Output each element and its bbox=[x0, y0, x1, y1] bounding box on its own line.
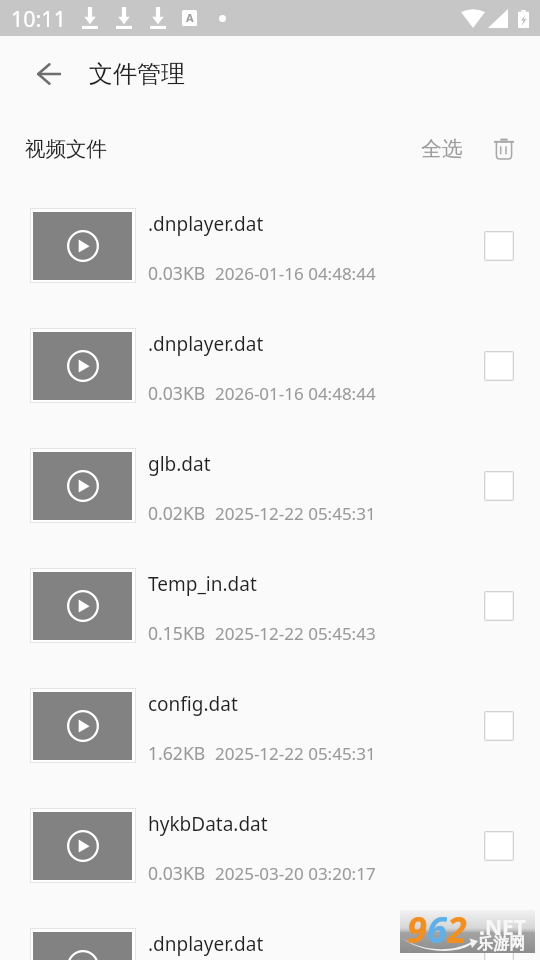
staticText: 0.02KB bbox=[148, 501, 206, 525]
button[interactable]: Delete bbox=[484, 129, 524, 169]
button[interactable]: Back bbox=[25, 50, 73, 98]
staticText: .dnplayer.dat bbox=[148, 331, 264, 357]
button[interactable]: hykbData.dat bbox=[0, 786, 540, 906]
staticText: .dnplayer.dat bbox=[148, 211, 264, 237]
staticText: 文件管理 bbox=[89, 59, 185, 89]
staticText: 6 bbox=[427, 905, 447, 948]
staticText: glb.dat bbox=[148, 451, 211, 477]
staticText: 10:11 bbox=[11, 4, 66, 33]
staticText: 0.03KB bbox=[148, 861, 206, 885]
staticText: 乐游网 bbox=[477, 934, 525, 954]
staticText: 2025-03-20 03:20:17 bbox=[215, 862, 376, 885]
button[interactable]: config.dat bbox=[0, 666, 540, 786]
staticText: Temp_in.dat bbox=[148, 571, 257, 597]
staticText: config.dat bbox=[148, 691, 238, 717]
button[interactable]: Select file bbox=[484, 591, 514, 621]
button[interactable]: .dnplayer.dat bbox=[0, 906, 540, 960]
staticText: 1.62KB bbox=[148, 741, 206, 765]
staticText: A bbox=[186, 10, 194, 25]
button[interactable]: Select file bbox=[484, 471, 514, 501]
staticText: 2025-12-22 05:45:31 bbox=[215, 742, 376, 765]
staticText: 2025-12-22 05:45:31 bbox=[215, 502, 376, 525]
button[interactable]: Select file bbox=[484, 231, 514, 261]
staticText: 9 bbox=[407, 905, 427, 948]
staticText: 0.03KB bbox=[148, 261, 206, 285]
button[interactable]: Select file bbox=[484, 831, 514, 861]
staticText: 全选 bbox=[421, 136, 463, 162]
button[interactable]: Select file bbox=[484, 711, 514, 741]
button[interactable]: .dnplayer.dat bbox=[0, 306, 540, 426]
button[interactable]: .dnplayer.dat bbox=[0, 186, 540, 306]
button[interactable]: 全选 bbox=[411, 128, 473, 170]
button[interactable]: Select file bbox=[484, 351, 514, 381]
staticText: 视频文件 bbox=[25, 136, 107, 162]
staticText: 0.15KB bbox=[148, 621, 206, 645]
button[interactable]: Temp_in.dat bbox=[0, 546, 540, 666]
staticText: hykbData.dat bbox=[148, 811, 268, 837]
staticText: 2 bbox=[447, 905, 467, 948]
staticText: 2026-01-16 04:48:44 bbox=[215, 382, 376, 405]
staticText: .dnplayer.dat bbox=[148, 931, 264, 957]
staticText: 2025-12-22 05:45:43 bbox=[215, 622, 376, 645]
button[interactable]: glb.dat bbox=[0, 426, 540, 546]
staticText: 0.03KB bbox=[148, 381, 206, 405]
button[interactable]: Select file bbox=[484, 951, 514, 960]
staticText: 2026-01-16 04:48:44 bbox=[215, 262, 376, 285]
staticText: .NET bbox=[479, 913, 526, 942]
